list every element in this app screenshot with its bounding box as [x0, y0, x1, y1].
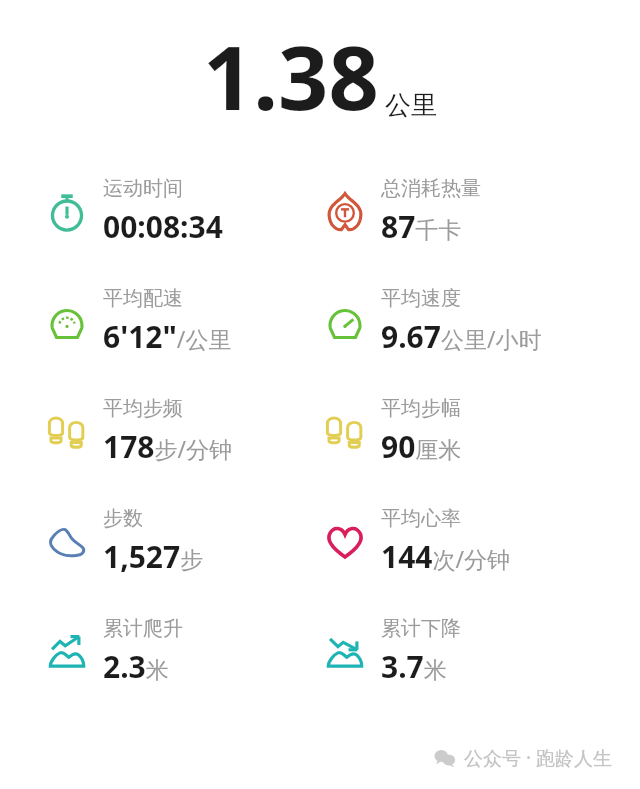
staticText: 6'12"/公里: [103, 316, 232, 357]
button[interactable]: 平均心率: [323, 506, 511, 577]
staticText: 累计下降: [381, 616, 461, 641]
button[interactable]: 平均步幅: [323, 396, 462, 467]
staticText: 累计爬升: [103, 616, 183, 641]
button[interactable]: 平均配速: [45, 286, 232, 357]
other: WeChat official account 跑龄人生: [434, 745, 612, 771]
button[interactable]: 累计下降: [323, 616, 461, 687]
button[interactable]: 平均步频: [45, 396, 233, 467]
staticText: 总消耗热量: [381, 176, 481, 201]
staticText: 平均配速: [103, 286, 183, 311]
button[interactable]: 累计爬升: [45, 616, 183, 687]
staticText: 平均步频: [103, 396, 183, 421]
staticText: 公众号 · 跑龄人生: [464, 745, 612, 771]
staticText: 运动时间: [103, 176, 183, 201]
staticText: 178步/分钟: [103, 426, 233, 467]
staticText: 3.7米: [381, 646, 447, 687]
staticText: 公里: [385, 89, 437, 122]
staticText: 87千卡: [381, 206, 462, 247]
button[interactable]: 运动时间: [45, 176, 223, 247]
staticText: 平均心率: [381, 506, 461, 531]
staticText: 144次/分钟: [381, 536, 511, 577]
staticText: 00:08:34: [103, 206, 223, 247]
staticText: 90厘米: [381, 426, 462, 467]
staticText: 1.38: [203, 16, 379, 136]
staticText: 步数: [103, 506, 143, 531]
staticText: 1,527步: [103, 536, 204, 577]
button[interactable]: 平均速度: [323, 286, 542, 357]
staticText: 2.3米: [103, 646, 169, 687]
button[interactable]: 总消耗热量: [323, 176, 481, 247]
staticText: 平均速度: [381, 286, 461, 311]
staticText: 9.67公里/小时: [381, 316, 542, 357]
button[interactable]: 步数: [45, 506, 204, 577]
staticText: 平均步幅: [381, 396, 461, 421]
